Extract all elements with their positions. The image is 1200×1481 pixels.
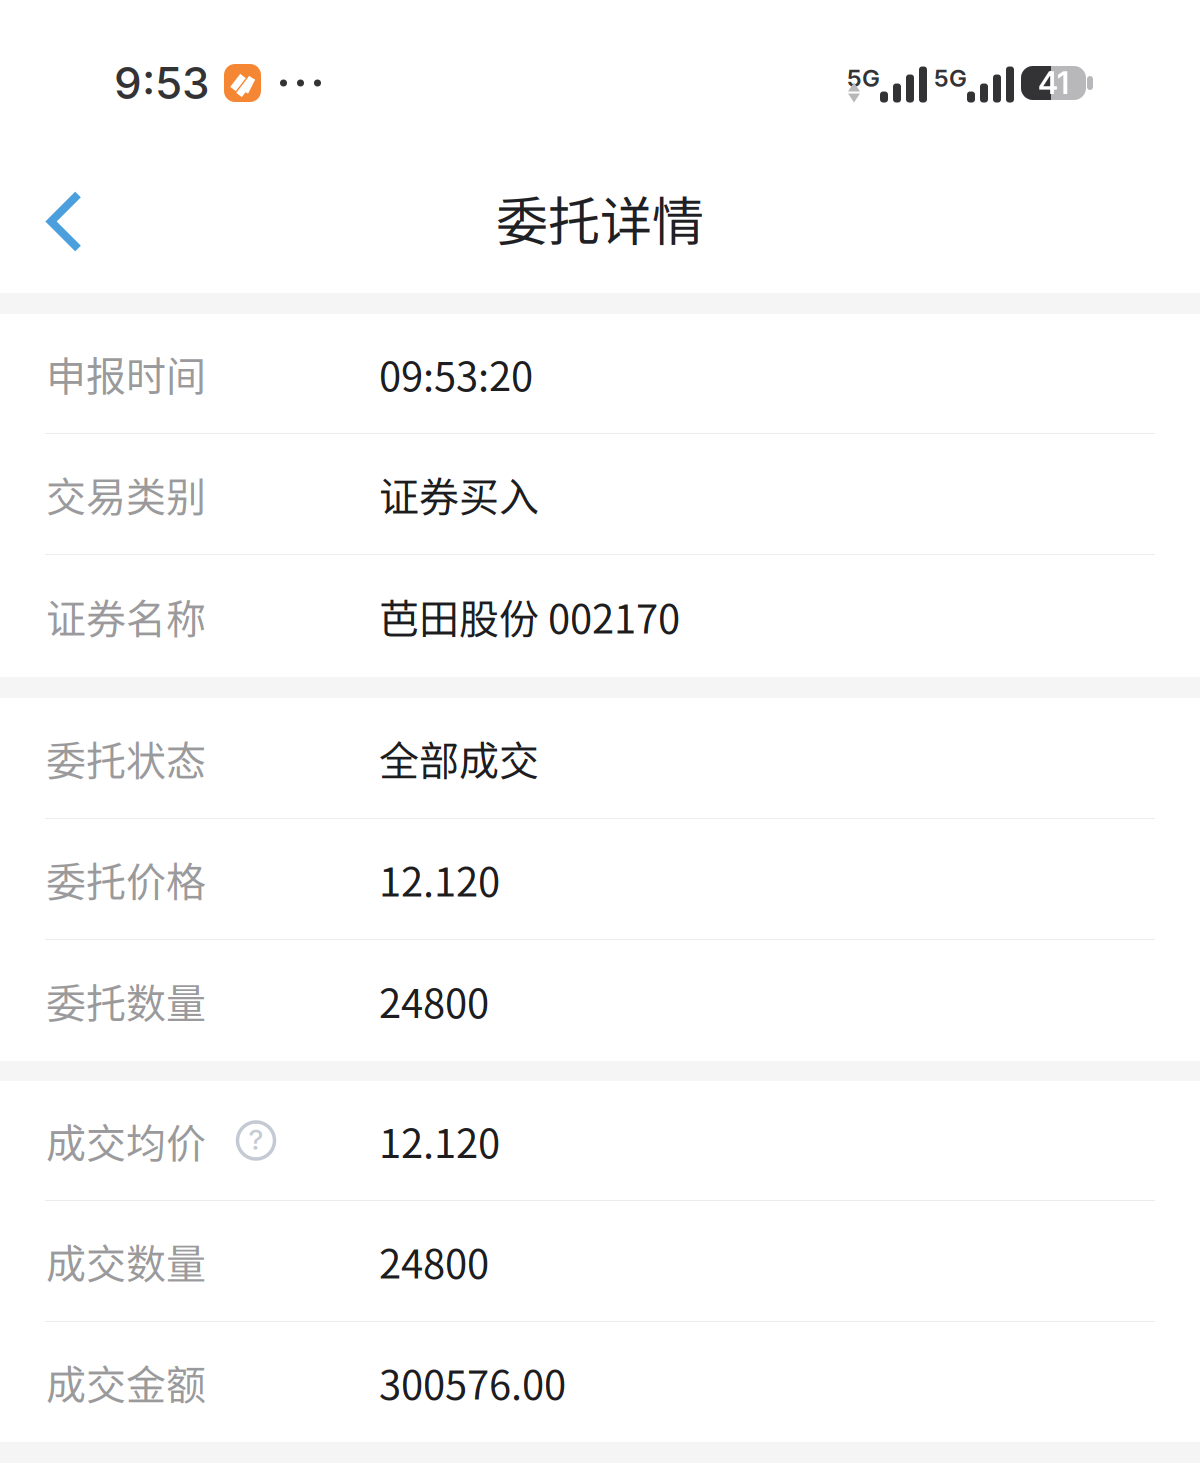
staticText: 申报时间 — [46, 344, 206, 402]
button[interactable]: 交易类别 — [0, 434, 1200, 555]
staticText: 证券买入 — [379, 465, 539, 523]
staticText: 委托数量 — [46, 971, 206, 1029]
staticText: 芭田股份 002170 — [379, 587, 680, 645]
staticText: ? — [248, 1123, 263, 1156]
button[interactable]: 申报时间 — [0, 314, 1200, 434]
staticText: 成交金额 — [46, 1353, 206, 1411]
staticText: 5G — [934, 63, 967, 92]
staticText: 委托价格 — [46, 850, 206, 908]
button[interactable]: 委托数量 — [0, 940, 1200, 1061]
staticText: 委托详情 — [496, 180, 704, 256]
staticText: 9:53 — [114, 56, 210, 110]
staticText: 全部成交 — [379, 729, 539, 787]
button[interactable]: 成交金额 — [0, 1322, 1200, 1442]
button[interactable]: 委托状态 — [0, 698, 1200, 819]
button[interactable]: Back — [0, 162, 84, 280]
button[interactable]: 证券名称 — [0, 555, 1200, 677]
staticText: 12.120 — [379, 1111, 500, 1169]
staticText: 24800 — [379, 971, 489, 1029]
staticText: 41 — [1038, 64, 1069, 101]
staticText: 09:53:20 — [379, 344, 533, 402]
staticText: 12.120 — [379, 850, 500, 908]
staticText: 成交均价 — [46, 1111, 206, 1169]
staticText: 交易类别 — [46, 465, 206, 523]
button[interactable]: 委托价格 — [0, 819, 1200, 940]
staticText: 300576.00 — [379, 1353, 566, 1411]
button[interactable]: 成交数量 — [0, 1201, 1200, 1322]
staticText: 5G — [847, 63, 880, 92]
staticText: 证券名称 — [46, 587, 206, 645]
button[interactable]: What is average fill price? — [236, 1120, 276, 1160]
staticText: 成交数量 — [46, 1232, 206, 1290]
staticText: 24800 — [379, 1232, 489, 1290]
button[interactable]: 成交均价 — [0, 1081, 1200, 1201]
staticText: 委托状态 — [46, 729, 206, 787]
